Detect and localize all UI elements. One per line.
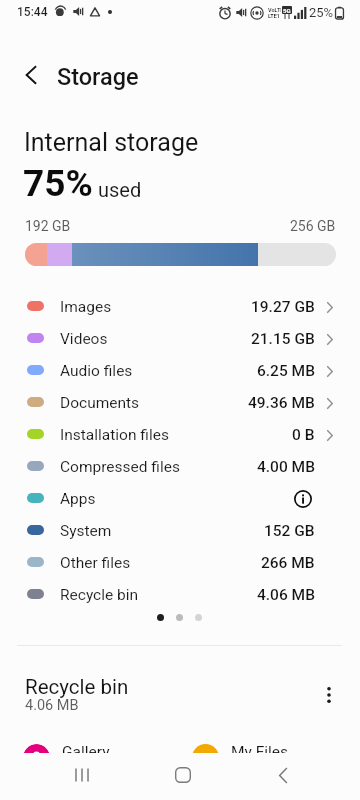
button[interactable]: About apps [289, 485, 317, 513]
staticText: Compressed files [60, 458, 180, 476]
button[interactable]: Recycle bin [0, 579, 360, 611]
staticText: 25% [309, 5, 334, 20]
staticText: Gallery [62, 743, 110, 761]
staticText: Recycle bin [25, 675, 129, 699]
staticText: VoLTE [268, 7, 281, 13]
staticText: 15:44 [17, 5, 48, 19]
staticText: 5G [283, 7, 291, 14]
button[interactable]: Videos [0, 323, 360, 355]
button[interactable]: Back [256, 753, 310, 797]
button[interactable]: Other files [0, 547, 360, 579]
button[interactable]: My Files [192, 744, 219, 771]
staticText: 4.06 MB [25, 697, 79, 714]
staticText: Storage [57, 63, 139, 91]
button[interactable]: Recent apps [55, 753, 109, 797]
button[interactable]: Audio files [0, 355, 360, 387]
staticText: 6.25 MB [257, 362, 315, 380]
staticText: 266 MB [261, 554, 315, 572]
staticText: My Files [231, 743, 289, 761]
button[interactable]: Gallery [23, 744, 50, 771]
staticText: Other files [60, 554, 131, 572]
staticText: used [98, 178, 142, 201]
button[interactable]: Images [0, 291, 360, 323]
staticText: Documents [60, 394, 140, 412]
staticText: 0 B [292, 426, 315, 444]
button[interactable]: Apps [0, 483, 360, 515]
staticText: Images [60, 298, 112, 316]
button[interactable]: Navigate up [11, 55, 51, 95]
staticText: LTE1 [268, 13, 281, 19]
staticText: 152 GB [264, 522, 315, 540]
button[interactable]: System [0, 515, 360, 547]
staticText: Internal storage [24, 128, 199, 157]
staticText: 19.27 GB [251, 298, 315, 316]
staticText: 4.06 MB [257, 586, 315, 604]
staticText: 192 GB [25, 218, 71, 234]
staticText: Installation files [60, 426, 169, 444]
staticText: 49.36 MB [248, 394, 315, 412]
staticText: Videos [60, 330, 108, 348]
staticText: 75% [23, 162, 93, 205]
button[interactable]: More options [313, 679, 345, 711]
staticText: Audio files [60, 362, 133, 380]
button[interactable]: Recycle bin [0, 671, 360, 719]
staticText: 256 GB [290, 218, 336, 234]
button[interactable]: Home [156, 753, 210, 797]
staticText: 21.15 GB [251, 330, 315, 348]
button[interactable]: Compressed files [0, 451, 360, 483]
staticText: Recycle bin [60, 586, 139, 604]
button[interactable]: Documents [0, 387, 360, 419]
staticText: Apps [60, 490, 96, 508]
staticText: 4.00 MB [257, 458, 315, 476]
staticText: System [60, 522, 112, 540]
button[interactable]: Installation files [0, 419, 360, 451]
